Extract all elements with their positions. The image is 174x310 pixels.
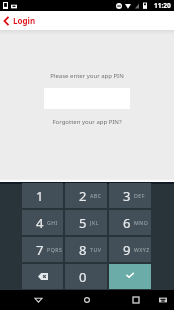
- staticText: 0: [79, 268, 87, 286]
- staticText: 9: [123, 241, 131, 259]
- button[interactable]: Recent apps: [126, 290, 146, 310]
- staticText: WXYZ: [134, 246, 150, 253]
- button[interactable]: 6: [109, 210, 151, 235]
- button[interactable]: 9: [109, 237, 151, 262]
- button[interactable]: Confirm PIN: [109, 264, 151, 289]
- staticText: JKL: [90, 219, 99, 226]
- staticText: 11:20: [154, 1, 171, 10]
- staticText: DEF: [134, 192, 145, 199]
- staticText: TUV: [90, 246, 102, 253]
- button[interactable]: Back: [28, 290, 48, 310]
- staticText: 6: [123, 214, 131, 232]
- staticText: PQRS: [47, 246, 63, 253]
- staticText: 4: [36, 214, 44, 232]
- staticText: Please enter your app PIN: [50, 72, 124, 80]
- staticText: 2: [79, 187, 87, 205]
- button[interactable]: Delete: [22, 264, 63, 289]
- staticText: 5: [79, 214, 87, 232]
- button[interactable]: Home: [77, 290, 97, 310]
- staticText: 8: [79, 241, 87, 259]
- staticText: ABC: [90, 192, 102, 199]
- button[interactable]: Back: [0, 11, 13, 30]
- button[interactable]: 7: [22, 237, 63, 262]
- button[interactable]: 3: [109, 183, 151, 208]
- button[interactable]: Change keyboard: [153, 290, 173, 310]
- button[interactable]: 4: [22, 210, 63, 235]
- staticText: 1: [36, 187, 44, 205]
- staticText: Login: [13, 15, 36, 26]
- button[interactable]: 2: [65, 183, 107, 208]
- staticText: 7: [36, 241, 44, 259]
- staticText: 3: [123, 187, 131, 205]
- button[interactable]: 8: [65, 237, 107, 262]
- button[interactable]: 5: [65, 210, 107, 235]
- staticText: GHI: [47, 219, 58, 226]
- button[interactable]: Forgotten your app PIN?: [52, 118, 122, 126]
- staticText: MNO: [134, 219, 149, 226]
- button[interactable]: 1: [22, 183, 63, 208]
- button[interactable]: 0: [65, 264, 107, 289]
